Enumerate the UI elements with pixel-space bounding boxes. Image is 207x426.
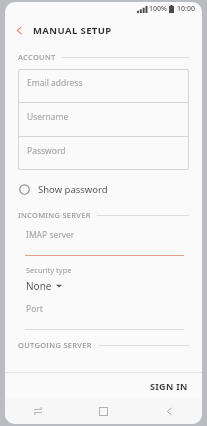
button[interactable]: Back bbox=[136, 398, 202, 424]
button[interactable]: Navigate up bbox=[5, 16, 33, 44]
button[interactable]: Port bbox=[5, 303, 202, 330]
staticText: SIGN IN bbox=[150, 380, 188, 392]
staticText: Password bbox=[27, 145, 66, 157]
staticText: Port bbox=[26, 303, 43, 315]
staticText: 100% bbox=[149, 4, 167, 14]
button[interactable]: Username bbox=[18, 103, 189, 136]
button[interactable]: SIGN IN bbox=[136, 374, 202, 398]
staticText: ACCOUNT bbox=[18, 52, 56, 62]
staticText: OUTGOING SERVER bbox=[18, 340, 92, 350]
button[interactable]: IMAP server bbox=[5, 229, 202, 256]
staticText: Username bbox=[27, 111, 69, 123]
button[interactable]: Password bbox=[18, 137, 189, 170]
staticText: Email address bbox=[27, 77, 83, 89]
staticText: None bbox=[26, 279, 52, 293]
button[interactable]: None bbox=[26, 279, 62, 293]
button[interactable]: Email address bbox=[18, 69, 189, 102]
staticText: MANUAL SETUP bbox=[33, 24, 112, 37]
button[interactable]: Recents bbox=[5, 398, 70, 424]
staticText: Show password bbox=[38, 183, 108, 196]
staticText: 10:00 bbox=[177, 4, 195, 14]
staticText: Security type bbox=[26, 265, 72, 275]
staticText: IMAP server bbox=[26, 229, 75, 241]
staticText: INCOMING SERVER bbox=[18, 210, 91, 220]
button[interactable]: Home bbox=[70, 398, 136, 424]
button[interactable]: Show password bbox=[5, 179, 202, 199]
